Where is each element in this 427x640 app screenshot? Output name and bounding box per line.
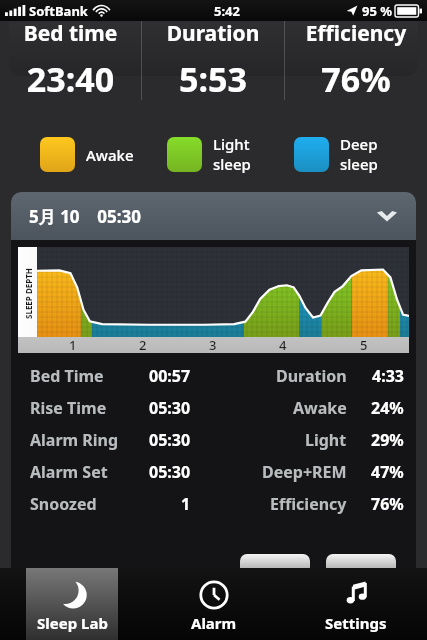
staticText: Rise Time [30, 397, 107, 419]
button[interactable]: Snoozed [11, 488, 416, 520]
staticText: Duration [142, 19, 284, 48]
button[interactable]: 5月 10 05:30 [11, 192, 416, 240]
button[interactable]: Settings [296, 568, 416, 640]
staticText: SoftBank [29, 2, 88, 20]
staticText: Snoozed [30, 493, 97, 515]
button[interactable]: Bed Time [11, 360, 416, 392]
staticText: Sleep Lab [37, 613, 108, 633]
staticText: 76% [371, 493, 404, 515]
staticText: 29% [371, 429, 404, 451]
staticText: SLEEP DEPTH [23, 268, 34, 319]
staticText: Bed time [0, 19, 141, 48]
staticText: Settings [325, 613, 387, 633]
staticText: Light [213, 134, 250, 154]
staticText: 2 [139, 336, 147, 352]
button[interactable] [240, 554, 310, 568]
button[interactable]: Alarm Ring [11, 424, 416, 456]
staticText: 4:33 [372, 365, 404, 387]
staticText: Bed Time [30, 365, 104, 387]
staticText: 5:42 [214, 2, 240, 20]
staticText: 5:53 [142, 56, 284, 102]
staticText: 76% [285, 56, 427, 102]
staticText: Awake [293, 397, 347, 419]
staticText: Efficiency [270, 493, 347, 515]
staticText: Awake [86, 145, 134, 165]
staticText: sleep [213, 154, 251, 174]
staticText: Alarm [191, 613, 237, 633]
staticText: Deep [340, 134, 378, 154]
staticText: Alarm Set [30, 461, 108, 483]
staticText: 1 [181, 493, 191, 515]
button[interactable]: Rise Time [11, 392, 416, 424]
staticText: 5 [360, 336, 368, 352]
staticText: Deep+REM [262, 461, 347, 483]
staticText: Efficiency [285, 19, 427, 48]
other: Expand [376, 210, 398, 223]
staticText: 05:30 [149, 461, 191, 483]
staticText: 00:57 [149, 365, 191, 387]
staticText: 5月 10 05:30 [29, 205, 141, 228]
button[interactable]: Alarm Set [11, 456, 416, 488]
staticText: Alarm Ring [30, 429, 119, 451]
staticText: sleep [340, 154, 378, 174]
staticText: 95 % [362, 2, 392, 20]
staticText: 05:30 [149, 429, 191, 451]
staticText: 23:40 [0, 56, 141, 102]
staticText: 47% [371, 461, 404, 483]
staticText: Light [305, 429, 347, 451]
staticText: 3 [209, 336, 217, 352]
button[interactable]: Sleep Lab [26, 568, 118, 640]
button[interactable]: Alarm [154, 568, 274, 640]
staticText: Duration [276, 365, 347, 387]
staticText: 24% [371, 397, 404, 419]
staticText: 05:30 [149, 397, 191, 419]
staticText: 4 [279, 336, 287, 352]
button[interactable] [326, 554, 396, 568]
staticText: 1 [69, 336, 77, 352]
